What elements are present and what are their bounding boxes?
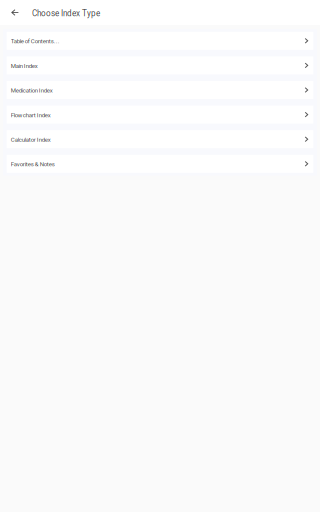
staticText: Medication Index — [11, 87, 53, 94]
button[interactable]: Favorites & Notes — [7, 155, 313, 173]
staticText: Choose Index Type — [32, 9, 100, 18]
staticText: Flowchart Index — [11, 112, 51, 119]
staticText: Favorites & Notes — [11, 161, 55, 168]
button[interactable]: Flowchart Index — [7, 106, 313, 124]
button[interactable]: Table of Contents... — [7, 32, 313, 50]
staticText: Main Index — [11, 62, 38, 69]
button[interactable]: Medication Index — [7, 81, 313, 99]
staticText: Table of Contents... — [11, 38, 60, 45]
button[interactable]: Calculator Index — [7, 130, 313, 148]
button[interactable]: Main Index — [7, 56, 313, 74]
staticText: Calculator Index — [11, 136, 51, 143]
button[interactable]: Back — [5, 0, 25, 25]
